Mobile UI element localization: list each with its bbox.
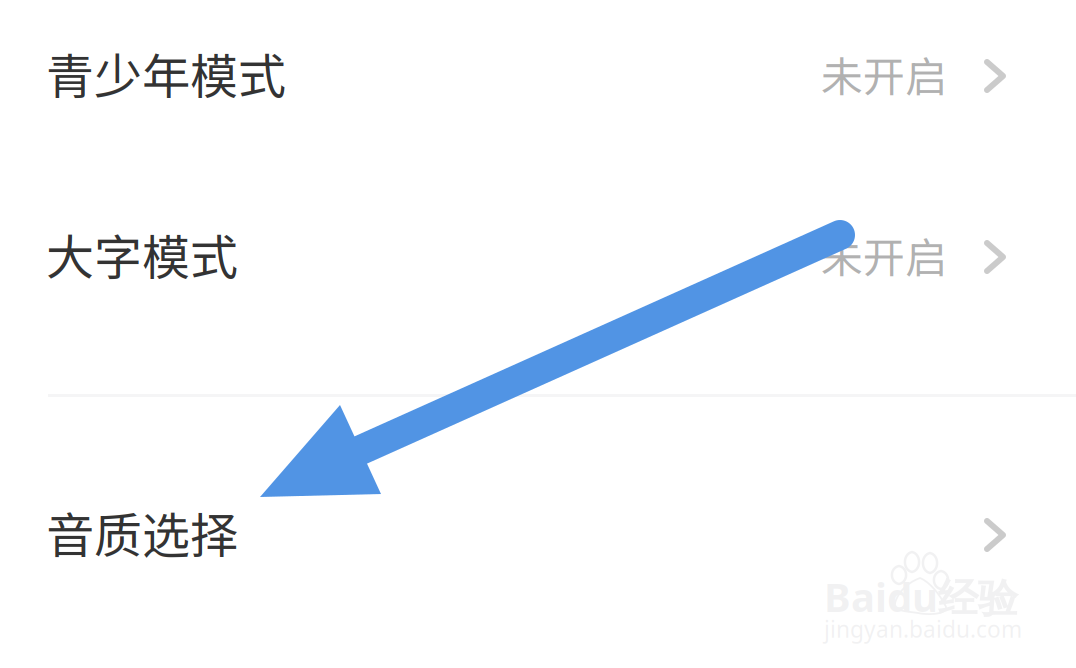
button[interactable]: 大字模式 [0,152,1076,395]
staticText: jingyan.baidu.com [824,614,1022,644]
staticText: 未开启 [821,44,947,104]
button[interactable]: 青少年模式 [0,0,1076,152]
button[interactable]: 音质选择 [0,397,1076,668]
staticText: Baidu经验 [824,570,1018,623]
staticText: 未开启 [821,225,947,285]
staticText: 青少年模式 [46,38,286,108]
staticText: 音质选择 [46,497,238,567]
staticText: 大字模式 [46,219,238,289]
